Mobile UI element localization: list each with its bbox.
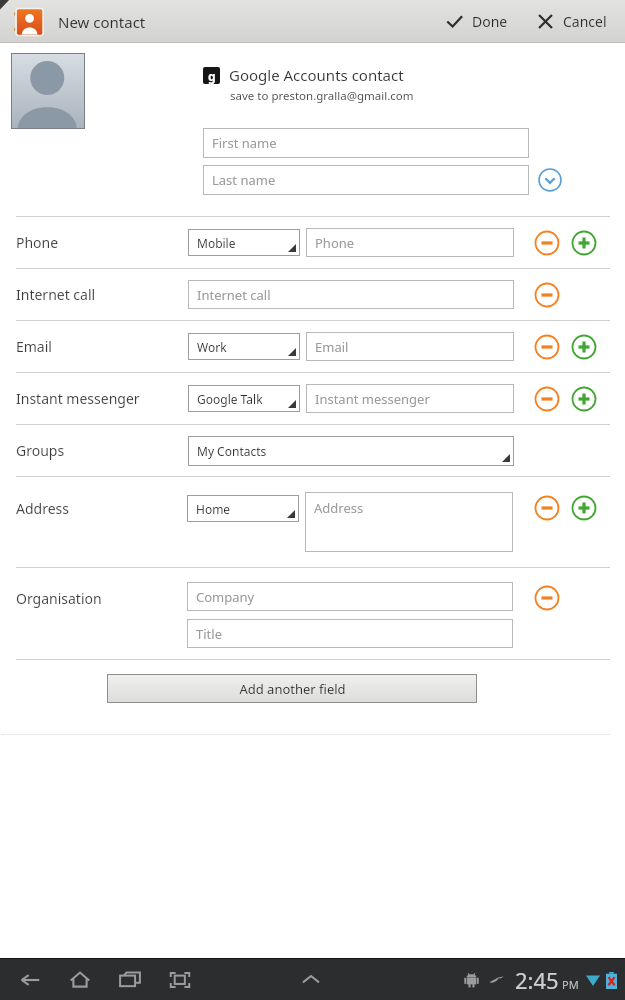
staticText: 2:45 (515, 965, 559, 995)
staticText: Email (315, 338, 349, 356)
button[interactable]: Add contact photo (11, 53, 85, 129)
button[interactable]: Address (305, 492, 513, 552)
button[interactable]: Remove field (534, 282, 560, 308)
button[interactable]: Phone (306, 228, 514, 257)
button[interactable]: Add field (571, 230, 597, 256)
staticText: Address (314, 499, 364, 517)
button[interactable]: Show notifications (294, 963, 328, 997)
staticText: Title (196, 625, 222, 643)
button[interactable]: Done (437, 6, 516, 37)
button[interactable]: Remove field (534, 230, 560, 256)
button[interactable]: Add field (571, 495, 597, 521)
staticText: Address (16, 499, 69, 518)
staticText: PM (562, 977, 579, 992)
button[interactable]: Back (8, 961, 52, 999)
button[interactable]: Remove field (534, 334, 560, 360)
staticText: g (208, 68, 216, 84)
staticText: save to preston.gralla@gmail.com (230, 88, 414, 104)
staticText: Groups (16, 441, 187, 460)
button[interactable]: Remove field (534, 495, 560, 521)
button[interactable]: Cancel (528, 6, 615, 37)
staticText: Internet call (197, 286, 271, 304)
button[interactable]: Add field (571, 386, 597, 412)
staticText: Phone (16, 233, 187, 252)
staticText: Company (196, 588, 255, 606)
button[interactable]: Google Talk (188, 385, 300, 412)
staticText: Google Accounts contact (229, 65, 404, 85)
staticText: My Contacts (197, 443, 267, 459)
staticText: Done (472, 12, 508, 31)
staticText: Phone (315, 234, 355, 252)
staticText: Internet call (16, 285, 187, 304)
button[interactable]: Screenshot (158, 961, 202, 999)
button[interactable]: Email (306, 332, 514, 361)
button[interactable]: First name (203, 128, 529, 158)
button[interactable]: Remove field (534, 585, 560, 611)
button[interactable]: Recent apps (108, 961, 152, 999)
staticText: Mobile (197, 235, 236, 251)
button[interactable]: Home (187, 495, 299, 522)
staticText: Last name (212, 171, 276, 189)
staticText: Google Talk (197, 391, 263, 407)
staticText: Home (196, 501, 231, 517)
staticText: Email (16, 337, 187, 356)
staticText: Add another field (239, 680, 346, 698)
button[interactable]: Mobile (188, 229, 300, 256)
button[interactable]: Title (187, 619, 513, 648)
button[interactable]: Last name (203, 165, 529, 195)
button[interactable]: Add another field (107, 674, 477, 703)
button[interactable]: Add field (571, 334, 597, 360)
button[interactable]: Instant messenger (306, 384, 514, 413)
button[interactable]: Internet call (188, 280, 514, 309)
staticText: Cancel (563, 12, 607, 31)
staticText: First name (212, 134, 277, 152)
staticText: Organisation (16, 589, 102, 608)
staticText: Work (197, 339, 227, 355)
button[interactable]: Company (187, 582, 513, 611)
staticText: Instant messenger (315, 390, 430, 408)
button[interactable]: Expand name fields (538, 168, 562, 192)
button[interactable]: Work (188, 333, 300, 360)
staticText: New contact (58, 12, 146, 32)
button[interactable]: Home (58, 961, 102, 999)
button[interactable]: Remove field (534, 386, 560, 412)
button[interactable]: My Contacts (188, 436, 514, 466)
button[interactable]: Contacts app (14, 7, 44, 37)
staticText: Instant messenger (16, 389, 187, 408)
